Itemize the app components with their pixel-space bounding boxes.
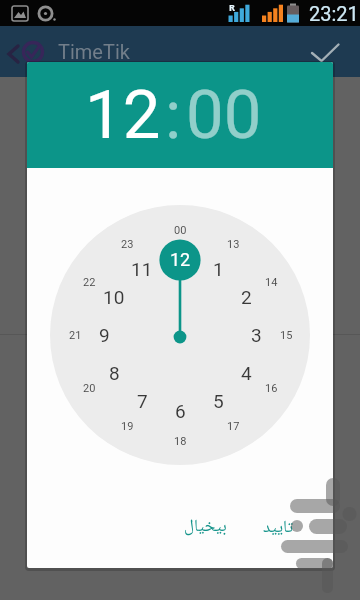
staticText: 13 (227, 238, 240, 251)
staticText: 6 (175, 400, 186, 422)
button[interactable] (0, 26, 52, 77)
staticText: 3 (251, 324, 262, 346)
staticText: 12 (85, 76, 161, 155)
staticText: 1 (213, 258, 224, 280)
staticText: بیخیال (184, 513, 227, 542)
staticText: تایید (263, 514, 294, 543)
staticText: 7 (137, 390, 148, 412)
staticText: 19 (121, 420, 134, 433)
staticText: 23 (121, 238, 134, 251)
staticText: 21 (69, 329, 82, 342)
staticText: TimeTik (58, 40, 130, 63)
staticText: 00 (174, 224, 187, 237)
staticText: 15 (280, 329, 293, 342)
staticText: 17 (227, 420, 240, 433)
staticText: 5 (213, 390, 224, 412)
staticText: 22 (83, 276, 96, 289)
staticText: 2 (241, 286, 252, 308)
staticText: 10 (103, 286, 125, 308)
staticText: 8 (109, 362, 120, 384)
staticText: 16 (265, 382, 278, 395)
staticText: 18 (174, 435, 187, 448)
staticText: : (165, 76, 182, 155)
button[interactable] (300, 34, 352, 74)
button[interactable]: تایید (245, 509, 311, 547)
staticText: 4 (241, 362, 252, 384)
staticText: 00 (186, 76, 262, 155)
staticText: R (229, 1, 235, 13)
staticText: 14 (265, 276, 278, 289)
staticText: 9 (99, 324, 110, 346)
staticText: 20 (83, 382, 96, 395)
staticText: 12 (170, 249, 191, 270)
staticText: 23:21 (309, 2, 359, 25)
staticText: 11 (131, 258, 153, 280)
button[interactable]: بیخیال (167, 508, 243, 546)
